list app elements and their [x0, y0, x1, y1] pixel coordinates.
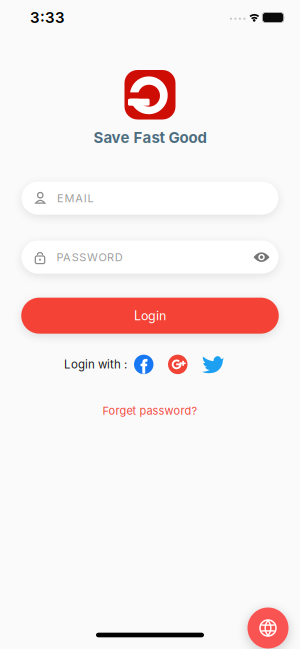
staticText: Login with :	[64, 357, 127, 371]
button[interactable]: Email	[21, 182, 278, 215]
button[interactable]: Forget password?	[102, 404, 197, 417]
button[interactable]: Login with Google Plus	[168, 355, 187, 374]
staticText: PASSWORD	[56, 250, 123, 264]
button[interactable]: Show password	[253, 252, 269, 262]
button[interactable]: Login	[21, 298, 279, 334]
staticText: Save Fast Good	[93, 128, 206, 147]
staticText: Forget password?	[102, 404, 197, 417]
button[interactable]: Change language	[247, 607, 288, 648]
staticText: EMAIL	[57, 191, 93, 205]
button[interactable]: Login with Twitter	[201, 355, 224, 374]
button[interactable]: Password	[21, 241, 278, 274]
staticText: Login	[134, 308, 166, 323]
button[interactable]: Login with Facebook	[134, 355, 153, 374]
staticText: 3:33	[30, 8, 65, 26]
